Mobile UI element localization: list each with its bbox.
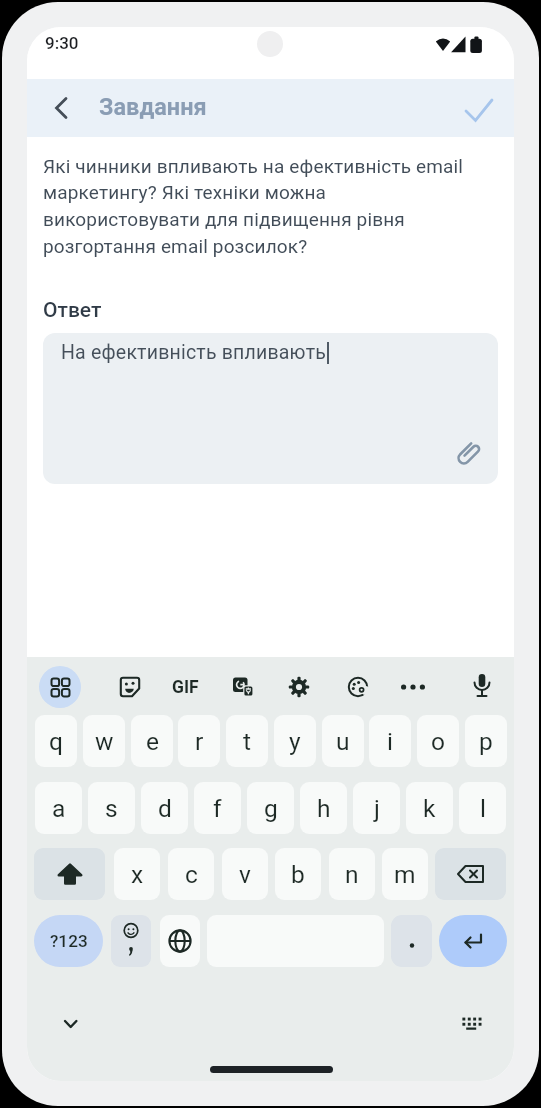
staticText: k [423,794,436,823]
staticText: n [345,860,359,889]
button[interactable]: x [114,848,160,900]
staticText: i [387,727,393,756]
staticText: На ефективність впливають [61,341,327,364]
staticText: Завдання [99,93,207,121]
button[interactable]: i [369,715,411,767]
button[interactable] [34,848,105,900]
staticText: h [317,794,331,823]
button[interactable]: l [459,782,506,834]
staticText: s [105,794,118,823]
button[interactable] [455,93,501,129]
button[interactable]: w [83,715,125,767]
button[interactable] [46,93,76,123]
staticText: p [479,727,493,756]
staticText: ?123 [50,931,88,951]
staticText: a [52,794,66,823]
button[interactable]: k [406,782,453,834]
button[interactable]: p [465,715,507,767]
staticText: j [374,794,380,823]
staticText: m [394,860,416,889]
staticText: v [239,860,251,889]
button[interactable]: o [417,715,459,767]
staticText: g [264,794,278,823]
button[interactable] [160,915,200,967]
button[interactable] [55,1009,87,1039]
staticText: d [158,794,172,823]
button[interactable]: m [382,848,428,900]
staticText: b [291,860,305,889]
button[interactable]: v [222,848,268,900]
staticText: o [431,727,445,756]
button[interactable]: e [131,715,173,767]
staticText: c [185,860,198,889]
button[interactable]: u [322,715,364,767]
button[interactable]: t [226,715,268,767]
staticText: l [480,794,486,823]
button[interactable]: GIF [167,673,203,701]
button[interactable] [399,673,427,701]
button[interactable]: На ефективність впливають [43,333,498,484]
button[interactable]: q [35,715,77,767]
button[interactable]: d [141,782,188,834]
button[interactable] [439,915,507,967]
button[interactable] [455,1009,487,1039]
button[interactable]: c [168,848,214,900]
staticText: q [49,727,63,756]
button[interactable] [111,915,151,967]
staticText: y [289,727,301,756]
button[interactable]: a [35,782,82,834]
button[interactable]: r [178,715,220,767]
staticText: w [95,727,114,756]
staticText: Які чинники впливають на ефективність em… [43,155,464,258]
button[interactable]: b [275,848,321,900]
staticText: t [243,727,252,756]
button[interactable] [228,673,257,701]
button[interactable]: n [329,848,375,900]
button[interactable] [39,666,81,708]
staticText: x [131,860,144,889]
button[interactable] [285,673,313,701]
staticText: u [336,727,350,756]
button[interactable] [468,671,496,703]
button[interactable]: j [353,782,400,834]
button[interactable]: ?123 [34,915,103,967]
button[interactable]: g [247,782,294,834]
staticText: GIF [172,677,199,698]
staticText: 9:30 [45,33,79,53]
staticText: f [213,794,222,823]
button[interactable] [435,848,506,900]
button[interactable]: y [274,715,316,767]
staticText: r [195,727,204,756]
button[interactable] [344,673,372,701]
button[interactable]: h [300,782,347,834]
button[interactable] [391,915,432,967]
button[interactable] [116,673,144,701]
staticText: Ответ [43,298,102,323]
staticText: e [146,727,159,756]
button[interactable]: f [194,782,241,834]
button[interactable]: s [88,782,135,834]
